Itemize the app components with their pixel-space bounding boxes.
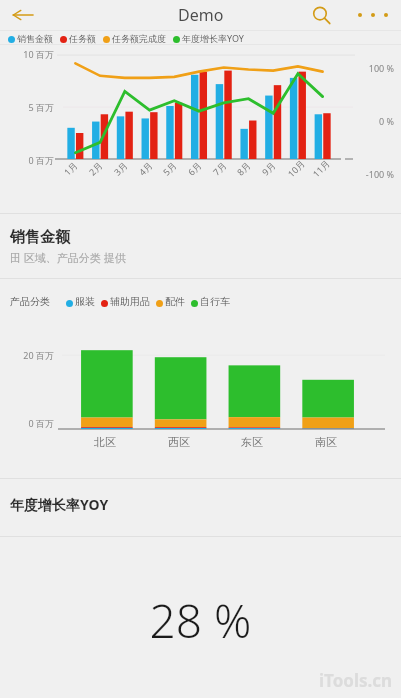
button[interactable]: Search	[307, 1, 335, 29]
staticText: 0 百万	[0, 154, 54, 166]
staticText: 北区	[94, 435, 116, 449]
staticText: 销售金额	[10, 228, 70, 247]
staticText: 2月	[86, 158, 105, 178]
staticText: 9月	[259, 158, 278, 178]
staticText: 南区	[315, 435, 337, 449]
staticText: 产品分类	[10, 295, 50, 308]
staticText: 西区	[168, 435, 190, 449]
staticText: 自行车	[200, 295, 230, 308]
staticText: 20 百万	[0, 349, 54, 361]
staticText: 6月	[185, 158, 204, 178]
staticText: 田 区域、产品分类 提供	[10, 250, 126, 265]
staticText: 10 百万	[0, 48, 54, 60]
staticText: 年度增长率YOY	[182, 32, 244, 44]
staticText: 5月	[160, 158, 179, 178]
staticText: 配件	[165, 295, 185, 308]
staticText: 11月	[310, 157, 332, 179]
staticText: 7月	[210, 158, 229, 178]
staticText: 年度增长率YOY	[10, 495, 109, 514]
staticText: 0 %	[340, 115, 394, 127]
staticText: 辅助用品	[110, 295, 150, 308]
staticText: 8月	[234, 158, 253, 178]
staticText: 东区	[241, 435, 263, 449]
staticText: 0 百万	[0, 417, 54, 429]
staticText: 任务额完成度	[112, 33, 166, 44]
staticText: 任务额	[69, 33, 96, 44]
staticText: -100 %	[340, 168, 394, 180]
staticText: iTools.cn	[319, 669, 393, 692]
staticText: 10月	[285, 157, 307, 179]
button[interactable]: Back	[8, 0, 38, 30]
staticText: 28 %	[0, 589, 401, 652]
staticText: 100 %	[340, 62, 394, 74]
staticText: 1月	[61, 158, 80, 178]
staticText: Demo	[178, 4, 224, 26]
staticText: 销售金额	[17, 33, 53, 44]
staticText: 4月	[136, 158, 155, 178]
staticText: 服装	[75, 295, 95, 308]
button[interactable]: More options	[351, 1, 395, 29]
staticText: 3月	[111, 158, 130, 178]
staticText: 5 百万	[0, 101, 54, 113]
